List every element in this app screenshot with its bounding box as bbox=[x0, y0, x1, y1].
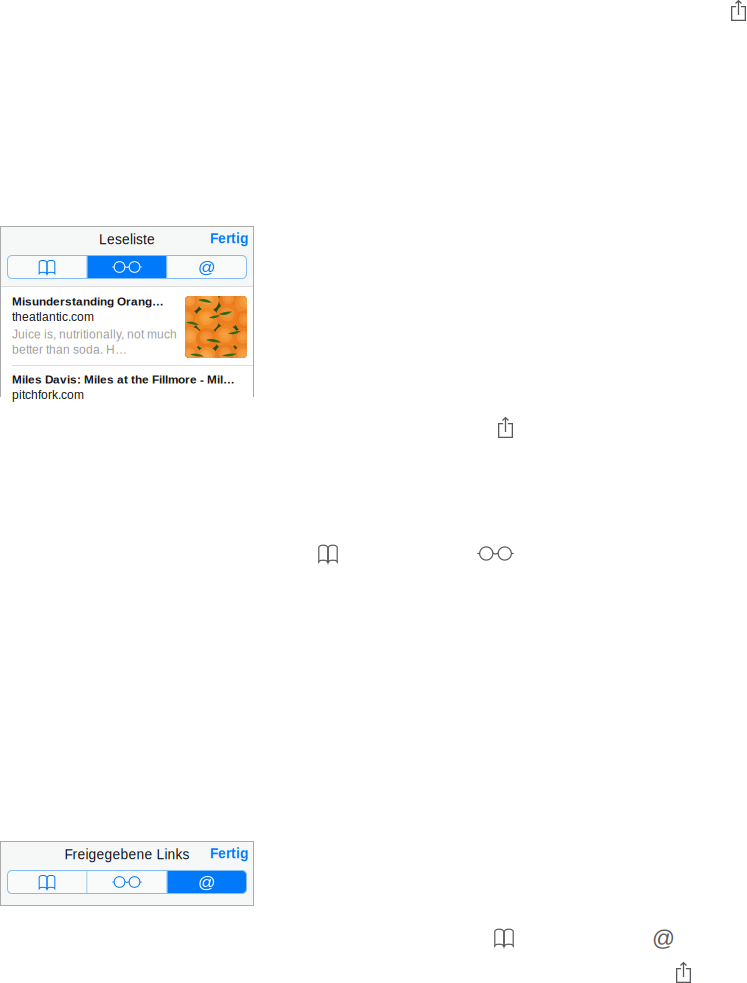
button[interactable]: Misunderstanding Orang… bbox=[0, 287, 254, 365]
staticText: Leseliste bbox=[99, 232, 155, 247]
button[interactable]: Freigegebene Links bbox=[167, 255, 246, 278]
staticText: Miles Davis: Miles at the Fillmore - Mil… bbox=[12, 373, 235, 386]
button[interactable]: Leseliste bbox=[87, 255, 166, 278]
button[interactable]: Lesezeichen bbox=[318, 544, 338, 563]
staticText: Misunderstanding Orang… bbox=[12, 295, 164, 308]
staticText: theatlantic.com bbox=[12, 310, 94, 323]
button[interactable]: Freigegebene Links bbox=[167, 870, 246, 893]
staticText: @ bbox=[198, 257, 216, 277]
staticText: Fertig bbox=[210, 231, 248, 246]
staticText: better than soda. H… bbox=[12, 343, 127, 356]
button[interactable]: Teilen bbox=[498, 417, 513, 438]
button[interactable]: Leseliste bbox=[87, 870, 166, 893]
button[interactable]: Lesezeichen bbox=[7, 870, 86, 893]
button[interactable]: Leseliste bbox=[477, 545, 514, 562]
staticText: Juice is, nutritionally, not much bbox=[12, 327, 177, 341]
staticText: Fertig bbox=[210, 846, 248, 861]
button[interactable]: Fertig bbox=[205, 226, 253, 251]
button[interactable]: Teilen bbox=[676, 962, 691, 983]
button[interactable]: Lesezeichen bbox=[494, 928, 514, 947]
button[interactable]: Lesezeichen bbox=[7, 255, 86, 278]
button[interactable]: Teilen bbox=[731, 0, 746, 21]
staticText: Freigegebene Links bbox=[64, 847, 189, 862]
button[interactable]: Fertig bbox=[205, 841, 253, 866]
staticText: @ bbox=[652, 925, 675, 950]
staticText: pitchfork.com bbox=[12, 388, 84, 401]
staticText: @ bbox=[198, 872, 216, 892]
button[interactable]: Freigegebene Links bbox=[652, 925, 675, 950]
button[interactable]: Miles Davis: Miles at the Fillmore - Mil… bbox=[0, 366, 254, 400]
